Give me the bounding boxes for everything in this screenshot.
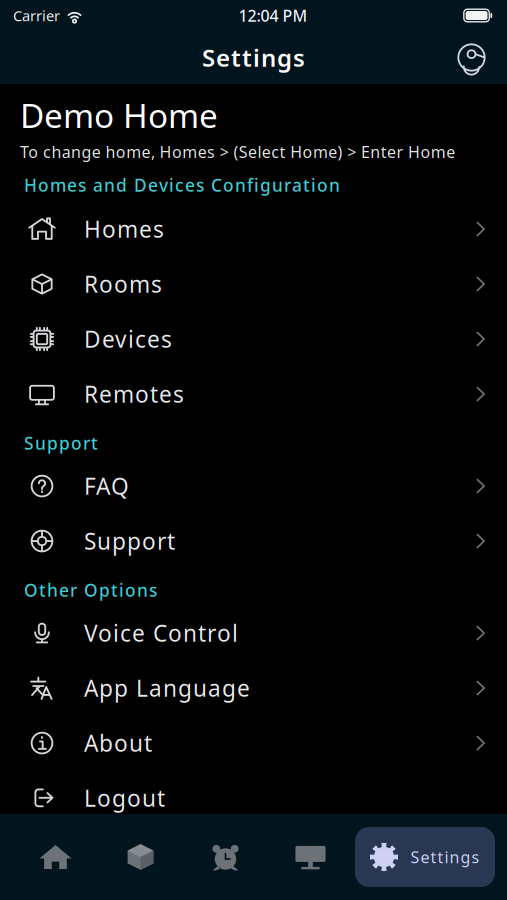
staticText: Demo Home — [20, 93, 218, 137]
button[interactable]: Support — [0, 513, 507, 568]
staticText: Remotes — [84, 379, 184, 409]
staticText: To change home, Homes > (Select Home) > … — [20, 141, 455, 162]
staticText: Support — [84, 526, 175, 556]
staticText: Carrier — [13, 6, 60, 25]
staticText: App Language — [84, 673, 250, 703]
staticText: Voice Control — [84, 618, 238, 648]
button[interactable]: Voice Control — [0, 606, 507, 661]
staticText: 12:04 PM — [238, 5, 307, 26]
button[interactable]: Settings — [355, 827, 495, 887]
button[interactable]: Devices — [0, 311, 507, 366]
button[interactable]: Rooms — [0, 256, 507, 311]
staticText: About — [84, 728, 152, 758]
button[interactable]: About — [0, 716, 507, 771]
staticText: Logout — [84, 783, 165, 813]
staticText: Settings — [202, 42, 305, 73]
button[interactable]: Account — [441, 32, 507, 83]
staticText: Homes — [84, 214, 164, 244]
staticText: Settings — [410, 846, 479, 868]
button[interactable]: Logout — [0, 771, 507, 826]
staticText: Other Options — [24, 578, 157, 601]
button[interactable]: Homes — [0, 201, 507, 256]
button[interactable]: Remotes — [0, 366, 507, 421]
button[interactable]: Rooms — [98, 821, 183, 893]
button[interactable]: FAQ — [0, 458, 507, 513]
button[interactable]: Alarms — [183, 821, 268, 893]
button[interactable]: Remotes — [268, 821, 353, 893]
staticText: Support — [24, 431, 98, 454]
button[interactable]: App Language — [0, 661, 507, 716]
staticText: FAQ — [84, 471, 129, 501]
staticText: Devices — [84, 324, 172, 354]
staticText: Rooms — [84, 269, 162, 299]
staticText: Homes and Devices Configuration — [24, 173, 340, 196]
button[interactable]: Home — [13, 821, 98, 893]
